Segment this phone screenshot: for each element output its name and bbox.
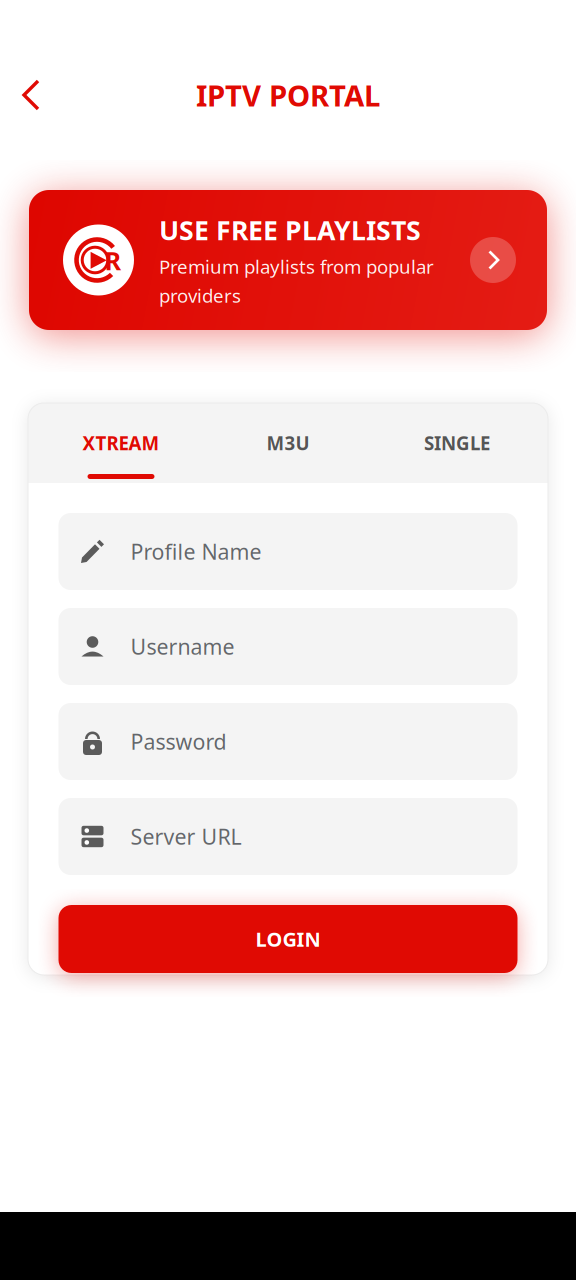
staticText: XTREAM <box>82 431 159 455</box>
staticText: USE FREE PLAYLISTS <box>159 212 421 248</box>
button[interactable]: SINGLE <box>373 403 541 483</box>
staticText: Server URL <box>130 822 241 851</box>
staticText: M3U <box>266 431 309 455</box>
staticText: Password <box>130 727 226 756</box>
button[interactable]: Profile Name <box>58 513 517 590</box>
staticText: Premium playlists from popular <box>159 254 434 279</box>
button[interactable]: LOGIN <box>58 905 517 973</box>
staticText: SINGLE <box>424 431 490 455</box>
button[interactable]: R <box>29 190 547 330</box>
staticText: R <box>104 244 121 277</box>
button[interactable]: Username <box>58 608 517 685</box>
button[interactable]: Back <box>4 65 64 125</box>
button[interactable]: Password <box>58 703 517 780</box>
staticText: Profile Name <box>130 537 261 566</box>
staticText: IPTV PORTAL <box>196 75 380 114</box>
staticText: providers <box>159 283 241 308</box>
button[interactable]: Server URL <box>58 798 517 875</box>
staticText: LOGIN <box>255 926 320 952</box>
staticText: Username <box>130 632 234 661</box>
button[interactable]: M3U <box>204 403 372 483</box>
button[interactable]: XTREAM <box>37 403 205 483</box>
